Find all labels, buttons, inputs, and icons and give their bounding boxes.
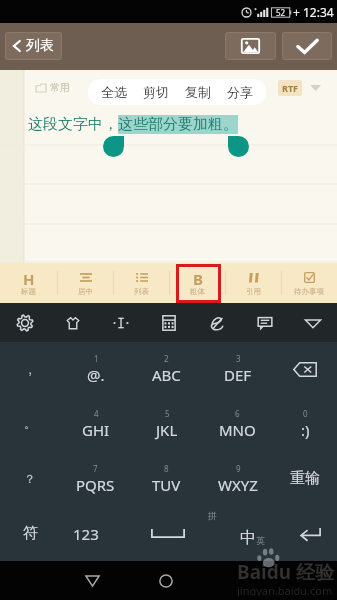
- staticText: 8: [164, 463, 169, 474]
- button[interactable]: 居中: [57, 263, 113, 303]
- button[interactable]: Cursor: [97, 303, 145, 342]
- button[interactable]: 拼: [202, 506, 284, 561]
- button[interactable]: H: [0, 263, 57, 303]
- staticText: 复制: [185, 84, 211, 100]
- other: Delete: [293, 362, 317, 377]
- button[interactable]: 0: [273, 396, 337, 451]
- staticText: 1: [94, 353, 99, 364]
- button[interactable]: Delete: [273, 342, 337, 396]
- button[interactable]: 符: [0, 506, 60, 561]
- staticText: 引用: [246, 287, 261, 296]
- button[interactable]: ，: [0, 342, 60, 396]
- staticText: ，: [24, 362, 36, 377]
- button[interactable]: Done: [282, 32, 332, 60]
- staticText: 剪切: [143, 84, 169, 100]
- staticText: 2: [164, 353, 169, 364]
- button[interactable]: 3: [202, 342, 273, 396]
- button[interactable]: Hide keyboard: [289, 303, 337, 342]
- staticText: 3: [236, 353, 241, 364]
- staticText: H: [23, 269, 35, 286]
- button[interactable]: 5: [131, 396, 202, 451]
- staticText: WXYZ: [218, 475, 258, 495]
- button[interactable]: 8: [131, 451, 202, 506]
- staticText: 这段文字中，: [28, 115, 118, 134]
- button[interactable]: 1: [60, 342, 131, 396]
- button[interactable]: 列表: [5, 32, 62, 60]
- staticText: 这些部分要加粗。: [118, 115, 238, 134]
- staticText: MNO: [219, 420, 256, 440]
- button[interactable]: 123: [60, 506, 112, 561]
- staticText: GHI: [82, 420, 110, 440]
- staticText: TUV: [152, 475, 181, 495]
- staticText: :): [301, 420, 310, 440]
- button[interactable]: 复制: [177, 79, 219, 105]
- button[interactable]: Theme: [49, 303, 97, 342]
- button[interactable]: 6: [202, 396, 273, 451]
- staticText: 重输: [290, 469, 320, 488]
- staticText: DEF: [224, 365, 252, 385]
- staticText: 分享: [227, 84, 253, 100]
- staticText: ？: [24, 471, 36, 486]
- staticText: 居中: [78, 287, 93, 296]
- button[interactable]: 引用: [225, 263, 281, 303]
- button[interactable]: 4: [60, 396, 131, 451]
- staticText: ABC: [152, 365, 181, 385]
- staticText: Baidu 经验: [237, 559, 334, 585]
- button[interactable]: Feedback: [241, 303, 289, 342]
- button[interactable]: Space: [112, 506, 224, 561]
- staticText: 0: [303, 408, 308, 419]
- staticText: 中: [240, 528, 256, 548]
- staticText: 拼: [208, 510, 217, 521]
- staticText: PQRS: [76, 475, 115, 495]
- button[interactable]: 。: [0, 396, 60, 451]
- button[interactable]: 全选: [93, 79, 135, 105]
- staticText: 7: [93, 463, 98, 474]
- button[interactable]: 待办事项: [281, 263, 337, 303]
- button[interactable]: 列表: [113, 263, 169, 303]
- staticText: B: [193, 269, 203, 286]
- button[interactable]: RTF: [278, 80, 302, 96]
- staticText: 9: [236, 463, 241, 474]
- button[interactable]: More options: [307, 82, 323, 94]
- button[interactable]: Layout: [145, 303, 193, 342]
- staticText: 待办事项: [294, 287, 324, 296]
- staticText: 粗体: [190, 287, 205, 296]
- staticText: 标题: [21, 287, 36, 296]
- button[interactable]: Handwriting: [193, 303, 241, 342]
- button[interactable]: 2: [131, 342, 202, 396]
- staticText: 英: [256, 535, 265, 546]
- button[interactable]: 9: [202, 451, 273, 506]
- button[interactable]: Home: [141, 561, 191, 600]
- staticText: 符: [23, 524, 38, 543]
- staticText: 4: [94, 408, 99, 419]
- button[interactable]: Back: [67, 561, 117, 600]
- staticText: 5: [165, 408, 170, 419]
- button[interactable]: Insert image: [225, 32, 276, 60]
- button[interactable]: B: [169, 263, 225, 303]
- button[interactable]: 重输: [273, 451, 337, 506]
- staticText: @.: [87, 365, 105, 385]
- staticText: 列表: [26, 37, 54, 55]
- staticText: JKL: [156, 420, 178, 440]
- staticText: 列表: [134, 287, 149, 296]
- staticText: 52: [276, 7, 286, 18]
- button[interactable]: ？: [0, 451, 60, 506]
- button[interactable]: Enter: [284, 506, 337, 561]
- button[interactable]: 剪切: [135, 79, 177, 105]
- staticText: + 12:34: [293, 4, 334, 20]
- staticText: 常用: [50, 81, 70, 94]
- staticText: RTF: [282, 82, 299, 94]
- staticText: jingyan.baidu.com: [237, 583, 333, 596]
- button[interactable]: 分享: [219, 79, 261, 105]
- staticText: 123: [73, 524, 99, 544]
- button[interactable]: 7: [60, 451, 131, 506]
- staticText: 全选: [101, 84, 127, 100]
- button[interactable]: Settings: [0, 303, 49, 342]
- staticText: 。: [24, 416, 36, 431]
- staticText: 6: [235, 408, 240, 419]
